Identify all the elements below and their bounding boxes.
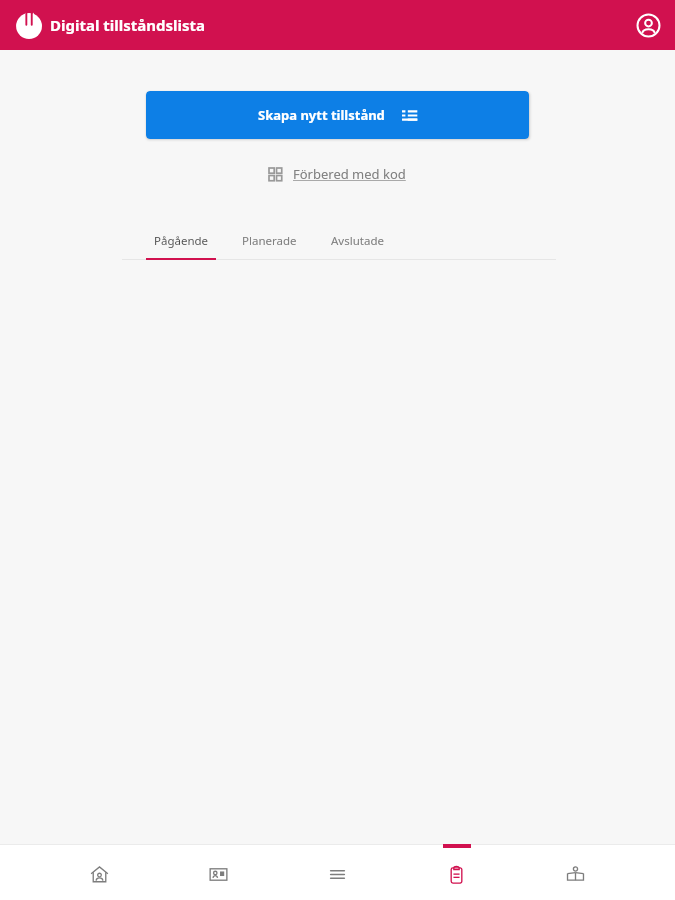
button[interactable]: Menu — [278, 844, 397, 900]
button[interactable]: Account — [631, 8, 665, 42]
staticText: Avslutade — [331, 233, 384, 249]
button[interactable]: Permits — [397, 844, 516, 900]
staticText: Skapa nytt tillstånd — [258, 106, 385, 124]
button[interactable]: Avslutade — [313, 223, 401, 260]
staticText: Digital tillståndslista — [50, 15, 205, 35]
button[interactable]: Contacts — [159, 844, 278, 900]
staticText: Förbered med kod — [293, 165, 406, 183]
button[interactable]: Planerade — [225, 223, 313, 260]
button[interactable]: Home — [40, 844, 159, 900]
staticText: Planerade — [242, 233, 297, 249]
staticText: Pågående — [154, 233, 209, 249]
button[interactable]: Förbered med kod — [269, 165, 406, 183]
button[interactable]: Learn — [516, 844, 635, 900]
button[interactable]: Skapa nytt tillstånd — [146, 91, 529, 139]
button[interactable]: Pågående — [137, 223, 225, 260]
